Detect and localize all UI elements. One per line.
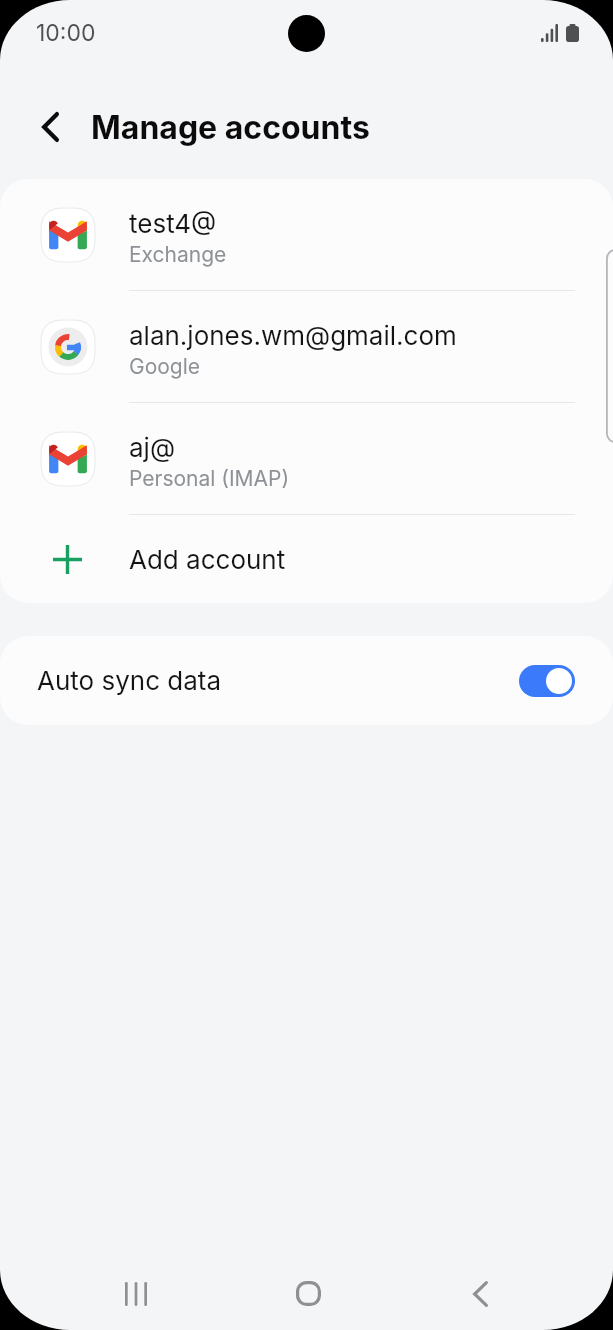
button[interactable]: Back bbox=[437, 1257, 523, 1330]
button[interactable]: alan.jones.wm@gmail.com bbox=[0, 291, 613, 402]
staticText: Add account bbox=[129, 544, 286, 575]
staticText: alan.jones.wm@gmail.com bbox=[129, 320, 457, 351]
button[interactable]: Add account bbox=[0, 515, 613, 603]
button[interactable]: Back bbox=[21, 98, 79, 156]
staticText: Exchange bbox=[129, 242, 227, 267]
button[interactable]: test4@ bbox=[0, 179, 613, 290]
staticText: test4@ bbox=[129, 208, 217, 239]
staticText: Auto sync data bbox=[37, 665, 222, 696]
button[interactable]: Recent apps bbox=[93, 1257, 179, 1330]
button[interactable]: Auto sync data toggle bbox=[519, 665, 575, 697]
staticText: 10:00 bbox=[36, 19, 96, 47]
staticText: Personal (IMAP) bbox=[129, 466, 290, 491]
staticText: aj@ bbox=[129, 432, 176, 463]
button[interactable]: aj@ bbox=[0, 403, 613, 514]
button[interactable]: Auto sync data bbox=[0, 636, 613, 725]
button[interactable]: Home bbox=[265, 1257, 351, 1330]
staticText: Manage accounts bbox=[91, 108, 370, 147]
staticText: Google bbox=[129, 354, 201, 379]
